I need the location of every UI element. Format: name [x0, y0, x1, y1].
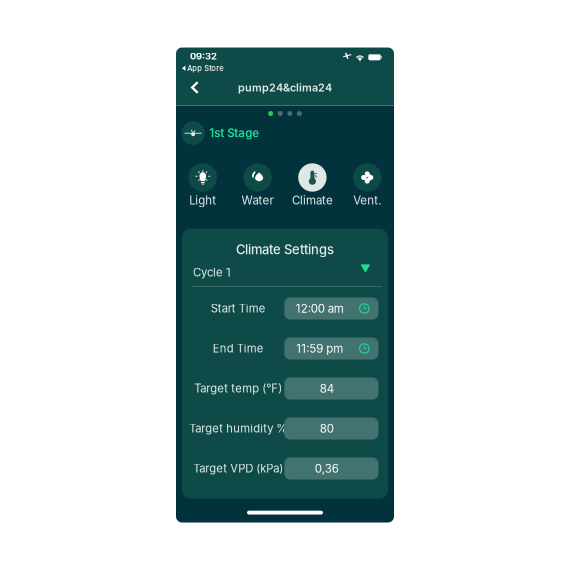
button[interactable]: Select cycle — [355, 264, 375, 280]
staticText: 84 — [320, 382, 334, 395]
button[interactable]: Climate — [288, 163, 336, 207]
staticText: Target VPD (kPa) — [193, 462, 283, 475]
staticText: App Store — [187, 64, 223, 73]
staticText: pump24&clima24 — [238, 81, 332, 94]
staticText: Target temp (°F) — [194, 382, 282, 395]
staticText: Light — [189, 193, 216, 207]
staticText: Cycle 1 — [193, 266, 231, 279]
button[interactable]: Vent. — [343, 163, 391, 207]
staticText: End Time — [213, 342, 264, 355]
staticText: Climate — [292, 193, 333, 207]
staticText: 1st Stage — [209, 126, 259, 140]
button[interactable]: Light — [179, 163, 227, 207]
staticText: 80 — [320, 422, 334, 435]
staticText: Vent. — [353, 193, 381, 207]
staticText: Start Time — [211, 302, 266, 315]
button[interactable]: 1st Stage — [176, 121, 394, 145]
staticText: Water — [242, 193, 274, 207]
staticText: 0,36 — [315, 462, 339, 475]
staticText: Climate Settings — [236, 242, 334, 257]
staticText: 11:59 pm — [296, 342, 343, 355]
staticText: 12:00 am — [296, 302, 344, 315]
button[interactable]: Back — [176, 75, 213, 99]
button[interactable]: Water — [234, 163, 282, 207]
staticText: 09:32 — [190, 50, 217, 62]
staticText: Target humidity % — [189, 422, 287, 435]
